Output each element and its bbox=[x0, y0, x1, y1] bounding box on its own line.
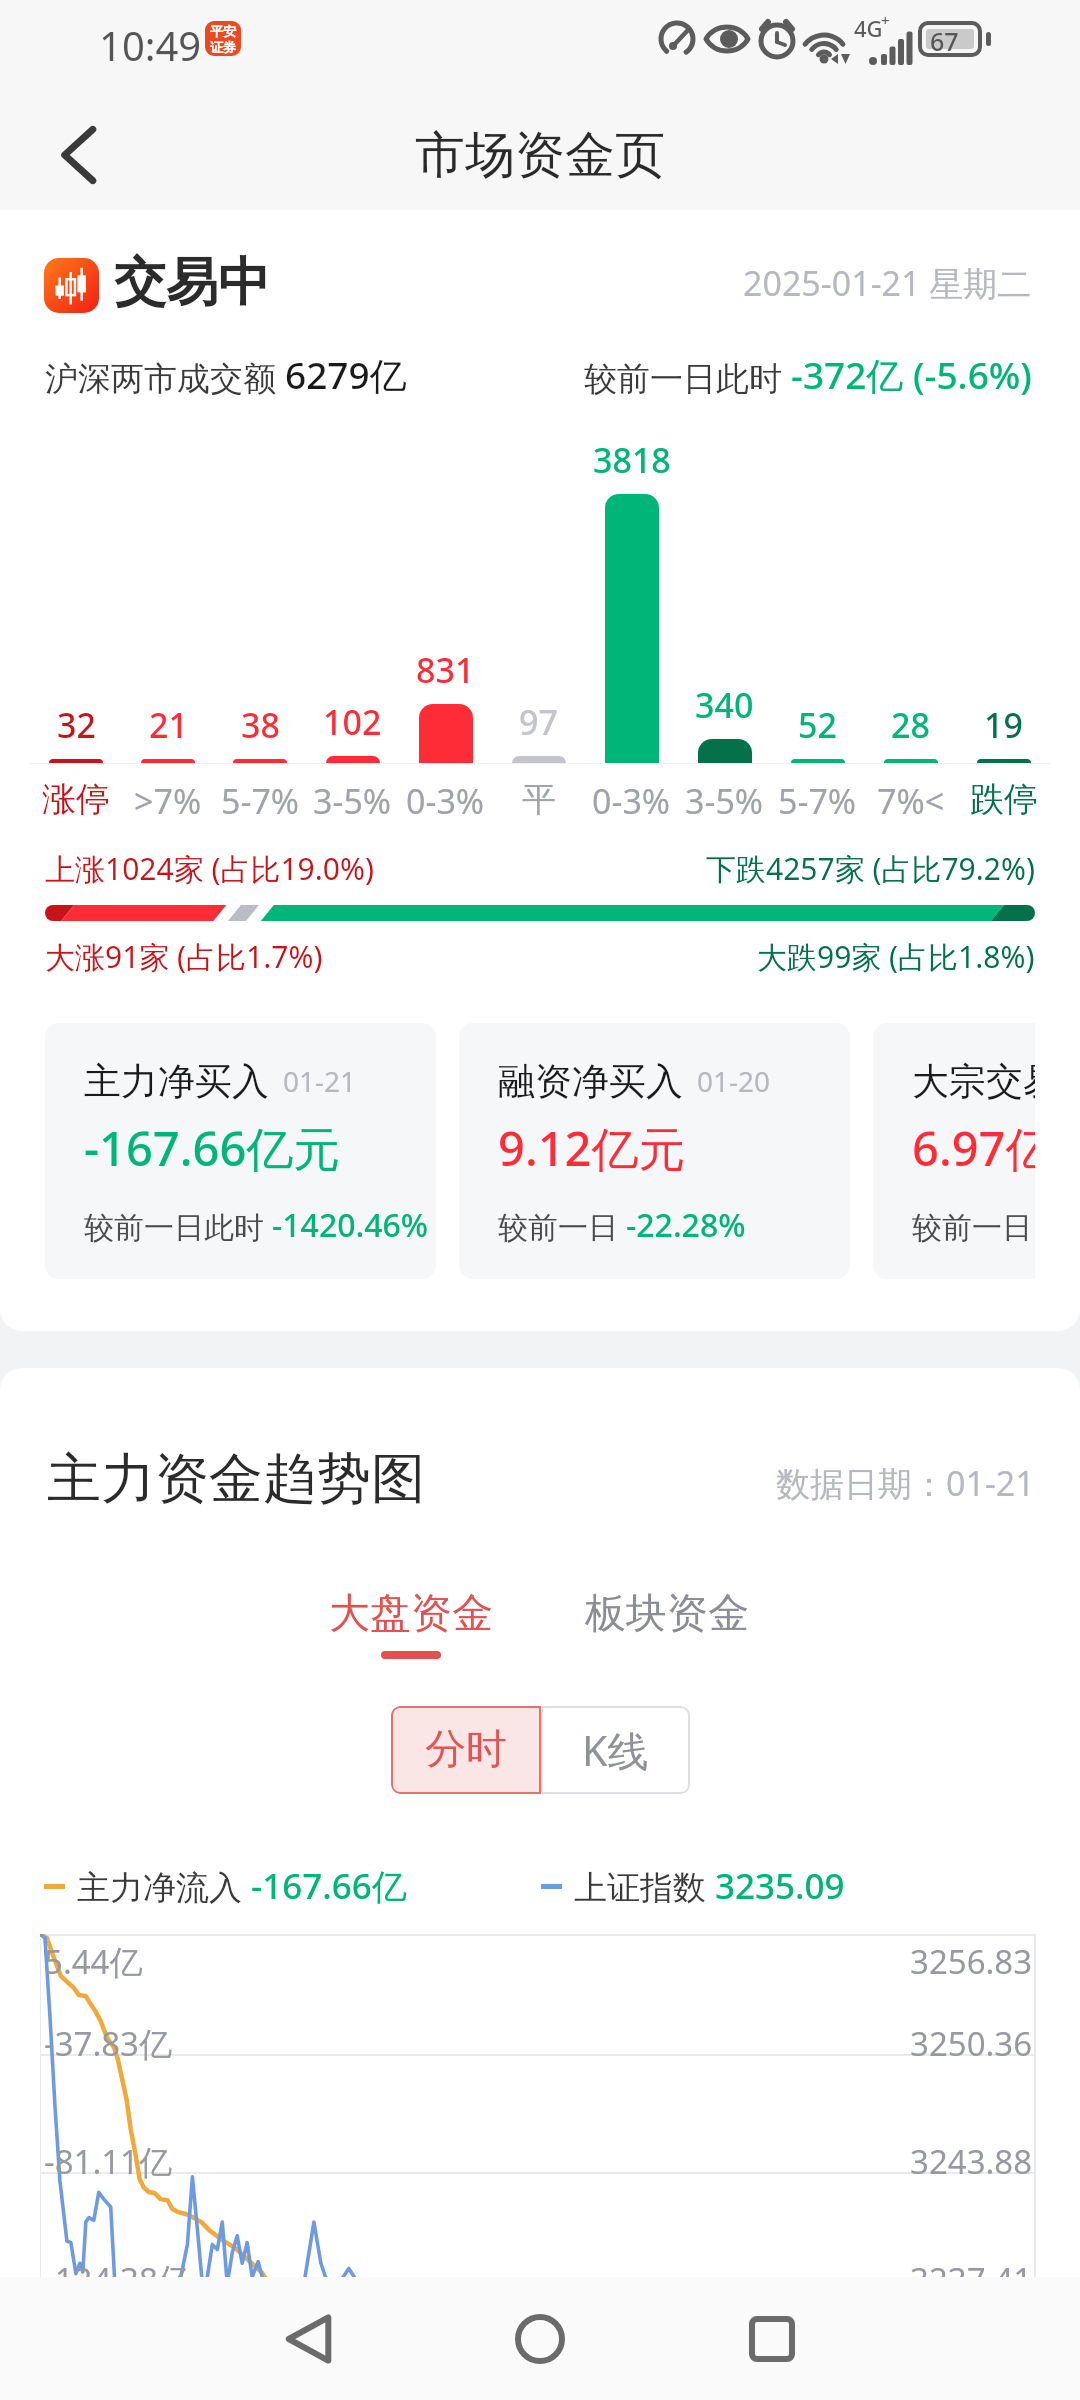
staticText: -167.66亿元 bbox=[84, 1116, 341, 1180]
staticText: 28 bbox=[891, 702, 930, 748]
staticText: 主力资金趋势图 bbox=[47, 1445, 425, 1513]
staticText: 上证指数 bbox=[574, 1864, 715, 1909]
staticText: 下跌4257家 (占比79.2%) bbox=[706, 848, 1035, 889]
staticText: 大跌99家 (占比1.8%) bbox=[757, 936, 1035, 977]
staticText: 分时 bbox=[425, 1724, 507, 1776]
staticText: -1420.46% bbox=[272, 1203, 429, 1247]
staticText: 平 bbox=[522, 778, 556, 821]
staticText: 主力净流入 bbox=[77, 1864, 251, 1909]
staticText: 较前一日 bbox=[498, 1206, 626, 1247]
button[interactable]: 主力净买入 bbox=[45, 1023, 436, 1279]
staticText: -167.66亿 bbox=[251, 1862, 407, 1910]
staticText: 较前一日此时 bbox=[584, 355, 791, 400]
staticText: 3243.88 bbox=[910, 2139, 1033, 2184]
staticText: 831 bbox=[416, 647, 475, 693]
staticText: 较前一日此时 bbox=[84, 1206, 272, 1247]
staticText: 跌停 bbox=[970, 778, 1038, 821]
staticText: -22.28% bbox=[626, 1203, 746, 1247]
staticText: 3256.83 bbox=[910, 1939, 1033, 1984]
button[interactable]: 分时 bbox=[391, 1706, 541, 1794]
staticText: 5.44亿 bbox=[44, 1939, 143, 1984]
button[interactable]: Home bbox=[480, 2277, 600, 2400]
staticText: 38 bbox=[241, 702, 280, 748]
staticText: 0-3% bbox=[406, 778, 485, 824]
staticText: 7%< bbox=[877, 778, 945, 824]
staticText: 3-5% bbox=[685, 778, 764, 824]
staticText: 平安 bbox=[210, 23, 236, 39]
staticText: 较前一日 bbox=[912, 1206, 1035, 1247]
staticText: 板块资金 bbox=[585, 1588, 749, 1640]
staticText: -37.83亿 bbox=[44, 2021, 172, 2066]
staticText: 交易中 bbox=[114, 250, 270, 316]
staticText: 数据日期：01-21 bbox=[776, 1460, 1035, 1506]
staticText: -81.11亿 bbox=[44, 2139, 172, 2184]
button[interactable]: 融资净买入 bbox=[459, 1023, 850, 1279]
staticText: 5-7% bbox=[778, 778, 857, 824]
staticText: 证券 bbox=[210, 39, 236, 55]
staticText: 97 bbox=[519, 699, 558, 745]
staticText: 市场资金页 bbox=[415, 124, 665, 187]
staticText: 01-20 bbox=[697, 1062, 771, 1100]
button[interactable]: K线 bbox=[541, 1706, 690, 1794]
staticText: 3237.41 bbox=[910, 2257, 1033, 2277]
staticText: -372亿 (-5.6%) bbox=[791, 349, 1032, 400]
staticText: 3-5% bbox=[313, 778, 392, 824]
staticText: 融资净买入 bbox=[498, 1058, 683, 1105]
staticText: 6.97亿元 bbox=[912, 1116, 1035, 1180]
staticText: 52 bbox=[798, 702, 837, 748]
staticText: 0-3% bbox=[592, 778, 671, 824]
staticText: 340 bbox=[695, 682, 754, 728]
staticText: 5-7% bbox=[221, 778, 300, 824]
staticText: 大涨91家 (占比1.7%) bbox=[45, 936, 323, 977]
button[interactable]: 板块资金 bbox=[565, 1568, 769, 1660]
staticText: 3818 bbox=[593, 437, 671, 483]
staticText: 3250.36 bbox=[910, 2021, 1033, 2066]
button[interactable]: Recents bbox=[712, 2277, 832, 2400]
staticText: 上涨1024家 (占比19.0%) bbox=[45, 848, 374, 889]
staticText: 9.12亿元 bbox=[498, 1116, 686, 1180]
staticText: 67 bbox=[930, 24, 959, 58]
staticText: 大盘资金 bbox=[329, 1588, 493, 1640]
staticText: K线 bbox=[582, 1722, 649, 1778]
staticText: 19 bbox=[984, 702, 1023, 748]
staticText: 2025-01-21 星期二 bbox=[743, 260, 1032, 306]
staticText: 4G bbox=[854, 13, 883, 43]
staticText: -124.38亿 bbox=[44, 2257, 191, 2277]
staticText: 21 bbox=[149, 702, 188, 748]
staticText: 01-21 bbox=[283, 1062, 357, 1100]
staticText: >7% bbox=[134, 778, 202, 824]
staticText: 主力净买入 bbox=[84, 1058, 269, 1105]
button[interactable]: 大盘资金 bbox=[309, 1568, 513, 1679]
button[interactable]: Back bbox=[249, 2277, 369, 2400]
button[interactable]: 大宗交易额 bbox=[873, 1023, 1035, 1279]
staticText: 6279亿 bbox=[285, 349, 407, 400]
staticText: + bbox=[881, 10, 890, 30]
staticText: 涨停 bbox=[42, 778, 110, 821]
staticText: 3235.09 bbox=[715, 1862, 845, 1910]
staticText: 102 bbox=[323, 699, 382, 745]
staticText: 沪深两市成交额 bbox=[45, 355, 285, 400]
staticText: 32 bbox=[57, 702, 96, 748]
button[interactable]: Back bbox=[0, 100, 160, 210]
staticText: 大宗交易额 bbox=[912, 1058, 1035, 1105]
staticText: 10:49 bbox=[99, 18, 202, 72]
